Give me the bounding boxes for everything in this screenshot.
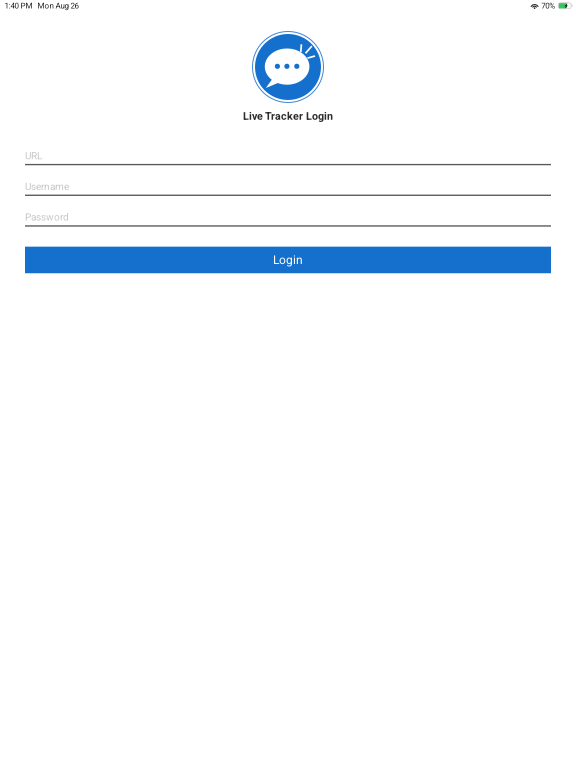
staticText: Login: [273, 253, 303, 267]
button[interactable]: URL: [25, 150, 551, 165]
staticText: 70%: [541, 1, 555, 10]
staticText: URL: [25, 150, 42, 162]
staticText: Live Tracker Login: [243, 110, 333, 122]
button[interactable]: Username: [25, 181, 551, 196]
staticText: Mon Aug 26: [37, 1, 78, 10]
staticText: Password: [25, 211, 69, 223]
staticText: 1:40 PM: [4, 1, 32, 10]
button[interactable]: Password: [25, 211, 551, 227]
staticText: Username: [25, 181, 69, 192]
button[interactable]: Login: [25, 247, 551, 273]
